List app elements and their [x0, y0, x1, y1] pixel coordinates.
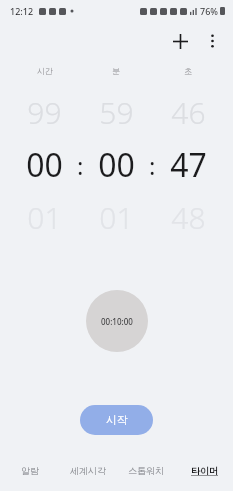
staticText: 00:10:00 — [101, 316, 133, 327]
staticText: 01 — [99, 197, 134, 238]
button[interactable]: 47 — [157, 143, 219, 187]
button[interactable]: 알람 — [0, 457, 59, 483]
staticText: 타이머 — [191, 465, 218, 476]
staticText: 76% — [200, 5, 218, 17]
staticText: 세계시각 — [70, 465, 106, 476]
button[interactable]: 세계시각 — [59, 457, 117, 483]
button[interactable]: More options — [197, 26, 227, 56]
staticText: 00 — [26, 143, 63, 187]
staticText: 59 — [99, 92, 134, 133]
button[interactable]: 00:10:00 — [86, 290, 148, 352]
button[interactable]: 스톱워치 — [117, 457, 175, 483]
button[interactable]: 타이머 — [175, 457, 233, 483]
staticText: : — [77, 149, 84, 182]
staticText: 시간 — [37, 66, 53, 76]
button[interactable]: 00 — [14, 143, 75, 187]
staticText: 47 — [170, 143, 207, 187]
staticText: 알람 — [21, 465, 39, 476]
staticText: 99 — [27, 92, 62, 133]
staticText: 분 — [112, 66, 120, 76]
staticText: 초 — [184, 66, 192, 76]
staticText: 스톱워치 — [128, 465, 164, 476]
button[interactable]: 00 — [85, 143, 147, 187]
staticText: 01 — [27, 197, 62, 238]
button[interactable]: 시작 — [80, 405, 153, 435]
staticText: 시작 — [106, 413, 128, 427]
staticText: : — [149, 149, 156, 182]
staticText: 12:12 — [10, 5, 34, 17]
staticText: 48 — [171, 197, 206, 238]
button[interactable]: Add timer — [163, 24, 197, 58]
staticText: 46 — [171, 92, 206, 133]
staticText: 00 — [98, 143, 135, 187]
